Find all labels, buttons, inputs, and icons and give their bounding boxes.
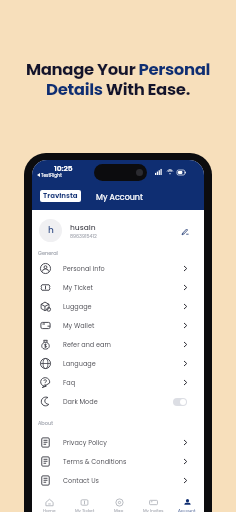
staticText: Dark Mode bbox=[63, 397, 98, 406]
staticText: husain bbox=[70, 222, 96, 232]
button[interactable]: My Invites bbox=[136, 495, 170, 512]
staticText: TestFlight bbox=[41, 172, 62, 178]
button[interactable]: Faq bbox=[32, 373, 204, 392]
button[interactable]: My Wallet bbox=[32, 316, 204, 335]
staticText: My Wallet bbox=[63, 321, 95, 330]
button[interactable]: Travinsta bbox=[40, 190, 81, 202]
staticText: Terms & Conditions bbox=[63, 457, 127, 466]
staticText: Contact Us bbox=[63, 476, 99, 485]
button[interactable]: Refer and earn bbox=[32, 335, 204, 354]
staticText: My Ticket bbox=[75, 508, 95, 512]
button[interactable]: Terms & Conditions bbox=[32, 452, 204, 471]
button[interactable]: h bbox=[32, 210, 204, 247]
button[interactable]: Account bbox=[170, 495, 204, 512]
button[interactable]: Home bbox=[32, 495, 67, 512]
button[interactable]: Language bbox=[32, 354, 204, 373]
staticText: Refer and earn bbox=[63, 340, 112, 349]
staticText: My Account bbox=[96, 192, 143, 203]
button[interactable]: Dark Mode bbox=[32, 392, 204, 411]
staticText: General bbox=[38, 250, 58, 257]
button[interactable]: Map bbox=[102, 495, 136, 512]
button[interactable]: Edit profile bbox=[180, 226, 190, 236]
staticText: Language bbox=[63, 359, 96, 368]
staticText: Manage Your Personal Details With Ease. bbox=[0, 58, 236, 101]
button[interactable]: My Ticket bbox=[32, 278, 204, 297]
staticText: Map bbox=[114, 508, 124, 512]
button[interactable]: Contact Us bbox=[32, 471, 204, 490]
button[interactable]: My Ticket bbox=[67, 495, 102, 512]
staticText: My Invites bbox=[143, 508, 164, 512]
staticText: Account bbox=[178, 508, 196, 512]
staticText: Luggage bbox=[63, 302, 92, 311]
button[interactable]: Personal info bbox=[32, 259, 204, 278]
staticText: Home bbox=[43, 508, 56, 512]
staticText: Personal info bbox=[63, 264, 105, 273]
staticText: 8963915412 bbox=[70, 233, 97, 240]
staticText: h bbox=[48, 224, 54, 237]
staticText: About bbox=[38, 420, 53, 427]
staticText: Travinsta bbox=[43, 191, 78, 201]
button[interactable]: Luggage bbox=[32, 297, 204, 316]
staticText: My Ticket bbox=[63, 283, 93, 292]
staticText: Faq bbox=[63, 378, 76, 387]
staticText: Privacy Policy bbox=[63, 438, 107, 447]
button[interactable]: Privacy Policy bbox=[32, 433, 204, 452]
staticText: 10:25 bbox=[54, 163, 73, 173]
